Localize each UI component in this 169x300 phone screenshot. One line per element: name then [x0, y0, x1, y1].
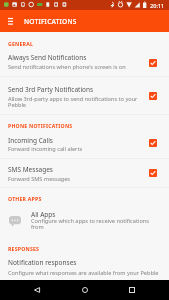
staticText: Notification responses	[8, 258, 77, 267]
staticText: Configure what responses are available f…	[8, 269, 163, 277]
button[interactable]: Home	[75, 280, 95, 300]
button[interactable]: Toggle setting	[149, 59, 157, 67]
staticText: OTHER APPS	[8, 195, 42, 202]
staticText: Allow 3rd-party apps to send notificatio…	[8, 95, 146, 109]
button[interactable]	[0, 77, 169, 113]
staticText: PHONE NOTIFICATIONS	[8, 122, 73, 129]
button[interactable]: Toggle setting	[149, 92, 157, 100]
staticText: Forward incoming call alerts	[8, 145, 158, 153]
button[interactable]	[0, 130, 169, 157]
staticText: 20:11	[150, 2, 165, 10]
button[interactable]	[0, 204, 169, 236]
staticText: All Apps	[31, 210, 56, 219]
staticText: NOTIFICATIONS	[24, 17, 77, 26]
button[interactable]	[0, 48, 169, 76]
staticText: Forward SMS messages	[8, 175, 158, 183]
staticText: Incoming Calls	[8, 136, 53, 145]
button[interactable]: Back	[27, 280, 47, 300]
staticText: RESPONSES	[8, 245, 40, 252]
staticText: GENERAL	[8, 40, 34, 47]
staticText: Always Send Notifications	[8, 53, 87, 62]
button[interactable]: Open navigation menu	[2, 10, 19, 32]
button[interactable]: Toggle setting	[149, 169, 157, 177]
button[interactable]: Recent apps	[122, 280, 142, 300]
staticText: Send 3rd Party Notifications	[8, 85, 94, 94]
button[interactable]	[0, 158, 169, 187]
staticText: Send notifications when phone's screen i…	[8, 63, 158, 71]
staticText: SMS Messages	[8, 165, 53, 174]
staticText: Configure which apps to receive notifica…	[31, 217, 161, 231]
button[interactable]	[0, 253, 169, 280]
button[interactable]: Toggle setting	[149, 139, 157, 147]
